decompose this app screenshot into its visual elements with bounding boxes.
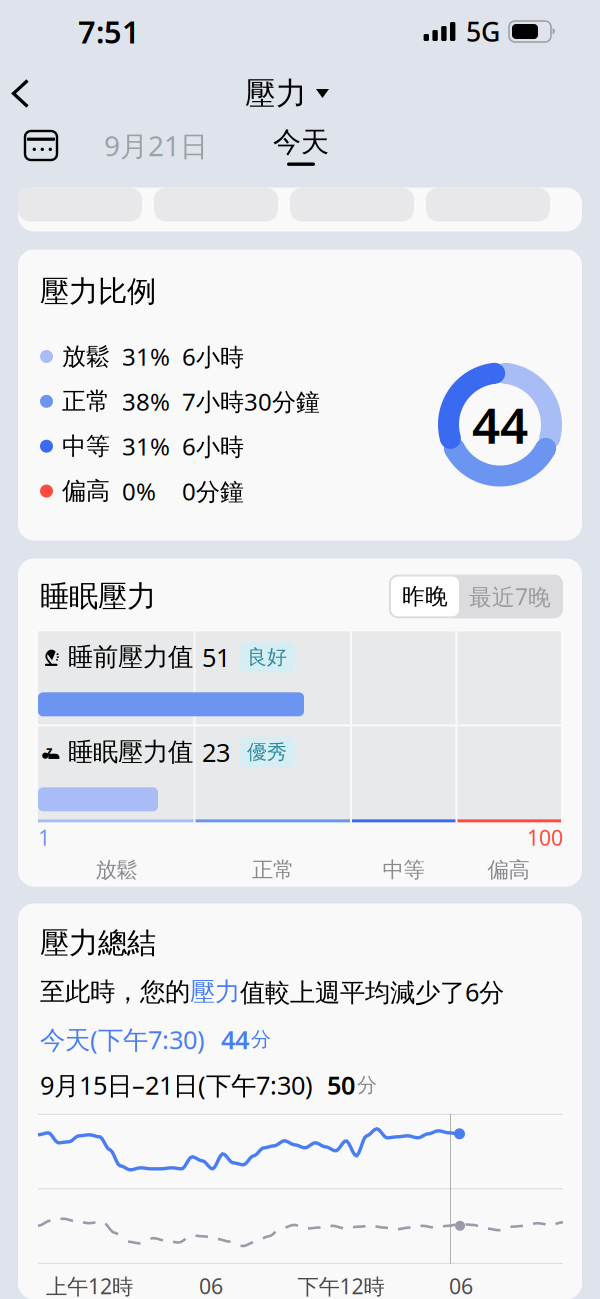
- staticText: 06: [449, 1272, 473, 1299]
- button[interactable]: 壓力: [245, 70, 329, 116]
- staticText: 51: [202, 640, 230, 674]
- staticText: 偏高: [487, 857, 529, 883]
- staticText: 31%: [122, 340, 170, 372]
- button[interactable]: 今天: [246, 123, 356, 167]
- button[interactable]: Calendar: [18, 125, 64, 165]
- staticText: 6小時: [182, 340, 244, 372]
- staticText: 壓力比例: [40, 273, 156, 309]
- staticText: 38%: [122, 385, 170, 417]
- staticText: 壓力總結: [40, 925, 156, 961]
- staticText: 睡眠壓力值: [68, 737, 193, 768]
- staticText: 6小時: [182, 430, 244, 462]
- staticText: 06: [199, 1272, 223, 1299]
- staticText: 壓力: [245, 75, 307, 112]
- staticText: 中等: [62, 431, 110, 461]
- staticText: 放鬆: [95, 857, 137, 883]
- staticText: 31%: [122, 430, 170, 462]
- staticText: 下午12時: [297, 1272, 384, 1299]
- staticText: 44: [221, 1022, 249, 1056]
- staticText: 今天: [273, 125, 329, 159]
- staticText: 7小時30分鐘: [182, 385, 320, 417]
- staticText: 9月21日: [104, 127, 208, 164]
- staticText: 至此時，您的: [40, 976, 190, 1007]
- staticText: 上午12時: [46, 1272, 133, 1299]
- staticText: 1: [38, 823, 50, 852]
- staticText: 正常: [252, 857, 294, 883]
- staticText: 0%: [122, 475, 156, 507]
- staticText: 昨晚: [402, 582, 448, 610]
- staticText: 0分鐘: [182, 475, 244, 507]
- staticText: 44: [472, 392, 528, 457]
- staticText: 最近7晚: [469, 581, 551, 611]
- staticText: 今天(下午7:30): [40, 1022, 205, 1056]
- staticText: 分: [357, 1073, 377, 1097]
- staticText: 9月15日–21日(下午7:30): [40, 1068, 313, 1102]
- staticText: 100: [527, 823, 563, 852]
- staticText: 中等: [382, 857, 424, 883]
- staticText: 50: [327, 1068, 355, 1102]
- staticText: 分: [251, 1027, 271, 1052]
- staticText: 正常: [62, 387, 110, 416]
- staticText: 壓力: [190, 976, 240, 1007]
- button[interactable]: 昨晚: [389, 574, 563, 618]
- staticText: 睡前壓力值: [68, 642, 193, 673]
- button[interactable]: 9月21日: [96, 123, 216, 167]
- staticText: 良好: [247, 645, 287, 669]
- staticText: 值較上週平均減少了6分: [240, 975, 504, 1008]
- staticText: 睡眠壓力: [40, 578, 156, 614]
- staticText: 優秀: [247, 740, 287, 764]
- staticText: 23: [202, 735, 230, 769]
- button[interactable]: Back: [0, 70, 48, 116]
- staticText: 5G: [466, 14, 500, 49]
- staticText: 放鬆: [62, 342, 110, 371]
- staticText: 7:51: [78, 11, 140, 52]
- staticText: z: [46, 742, 53, 760]
- staticText: 偏高: [62, 476, 110, 506]
